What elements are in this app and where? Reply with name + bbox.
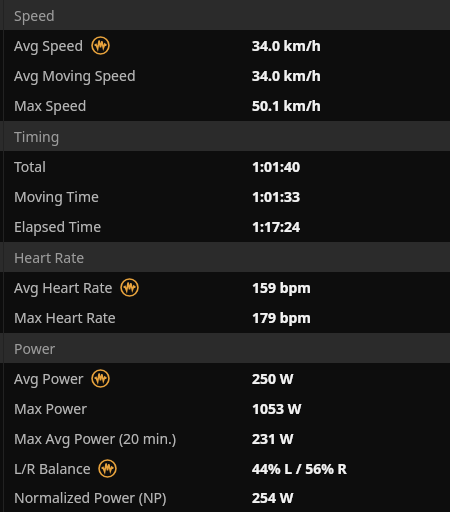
other: Show Avg Heart Rate graph	[120, 278, 139, 297]
staticText: 159 bpm	[252, 278, 312, 297]
staticText: Elapsed Time	[14, 217, 102, 236]
staticText: 254 W	[252, 488, 294, 507]
staticText: Avg Heart Rate	[14, 278, 113, 297]
staticText: 231 W	[252, 429, 294, 448]
button[interactable]: Avg Moving Speed	[0, 60, 450, 90]
button[interactable]: Avg Heart Rate	[0, 272, 450, 302]
button[interactable]: Total	[0, 151, 450, 181]
staticText: Avg Power	[14, 369, 84, 388]
staticText: 1053 W	[252, 399, 302, 418]
staticText: 50.1 km/h	[252, 96, 321, 115]
staticText: 1:01:33	[252, 187, 300, 206]
button[interactable]: Max Speed	[0, 90, 450, 120]
button[interactable]: Moving Time	[0, 181, 450, 211]
staticText: L/R Balance	[14, 459, 91, 478]
staticText: Total	[14, 157, 46, 176]
staticText: Normalized Power (NP)	[14, 488, 167, 507]
staticText: 34.0 km/h	[252, 66, 321, 85]
staticText: 1:01:40	[252, 157, 300, 176]
staticText: Power	[14, 339, 56, 358]
staticText: Max Avg Power (20 min.)	[14, 429, 177, 448]
staticText: Max Heart Rate	[14, 308, 116, 327]
button[interactable]: Max Avg Power (20 min.)	[0, 423, 450, 453]
other: Show L/R Balance graph	[98, 459, 117, 478]
staticText: Max Power	[14, 399, 87, 418]
other: Show Avg Speed graph	[91, 36, 110, 55]
staticText: Avg Speed	[14, 36, 84, 55]
staticText: 250 W	[252, 369, 294, 388]
staticText: 44% L / 56% R	[252, 459, 347, 478]
staticText: Heart Rate	[14, 248, 85, 267]
staticText: Avg Moving Speed	[14, 66, 136, 85]
button[interactable]: Elapsed Time	[0, 211, 450, 241]
staticText: Moving Time	[14, 187, 99, 206]
button[interactable]: Avg Speed	[0, 30, 450, 60]
button[interactable]: L/R Balance	[0, 453, 450, 483]
staticText: 34.0 km/h	[252, 36, 321, 55]
staticText: Timing	[14, 127, 60, 146]
other: Show Avg Power graph	[91, 369, 110, 388]
staticText: 1:17:24	[252, 217, 300, 236]
button[interactable]: Avg Power	[0, 363, 450, 393]
staticText: Max Speed	[14, 96, 87, 115]
button[interactable]: Max Heart Rate	[0, 302, 450, 332]
button[interactable]: Normalized Power (NP)	[0, 483, 450, 512]
staticText: Speed	[14, 6, 55, 25]
button[interactable]: Max Power	[0, 393, 450, 423]
staticText: 179 bpm	[252, 308, 312, 327]
